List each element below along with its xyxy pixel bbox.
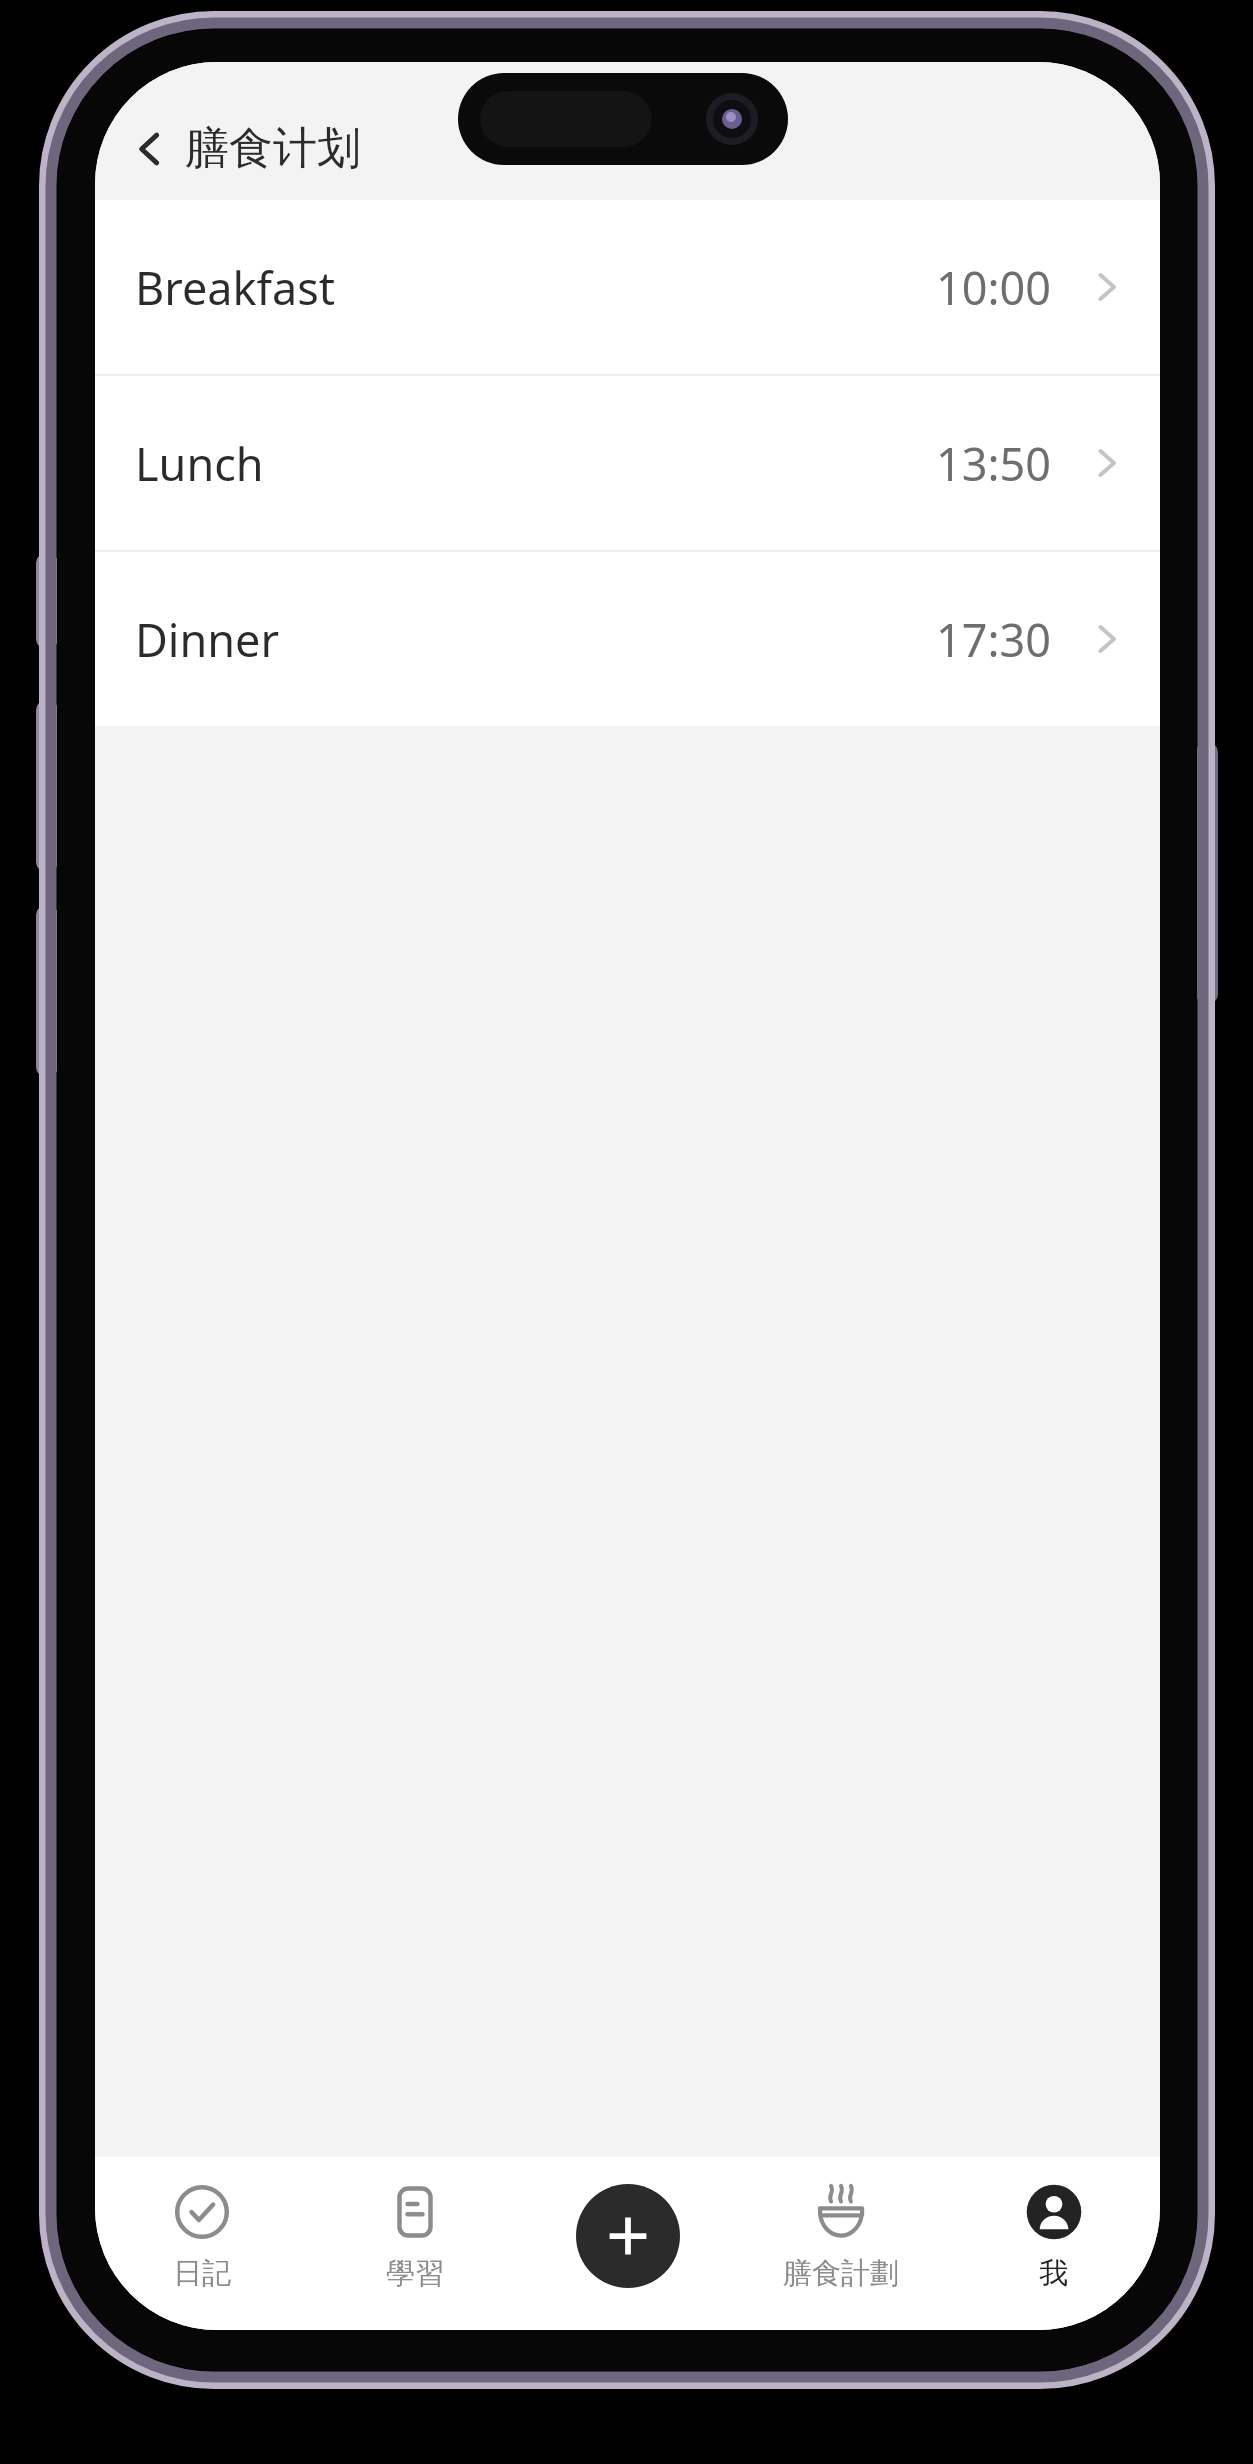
button[interactable]: Lunch [95,376,1160,550]
staticText: 學習 [386,2255,444,2292]
staticText: 膳食计划 [185,121,361,176]
other: Back [129,128,171,170]
staticText: 日記 [173,2255,231,2292]
staticText: Breakfast [135,257,336,318]
staticText: Lunch [135,433,264,494]
button[interactable]: 膳食計劃 [734,2157,947,2330]
staticText: 我 [1039,2255,1068,2292]
button[interactable]: Dinner [95,552,1160,726]
staticText: 17:30 [936,609,1052,670]
staticText: 10:00 [936,257,1052,318]
staticText: 膳食計劃 [783,2255,899,2292]
button[interactable]: Breakfast [95,200,1160,374]
button[interactable]: 學習 [308,2157,521,2330]
staticText: Dinner [135,609,280,670]
button[interactable]: Add [576,2184,680,2288]
staticText: 13:50 [936,433,1052,494]
button[interactable]: 日記 [95,2157,308,2330]
button[interactable]: Back [123,115,367,182]
button[interactable]: 我 [947,2157,1160,2330]
